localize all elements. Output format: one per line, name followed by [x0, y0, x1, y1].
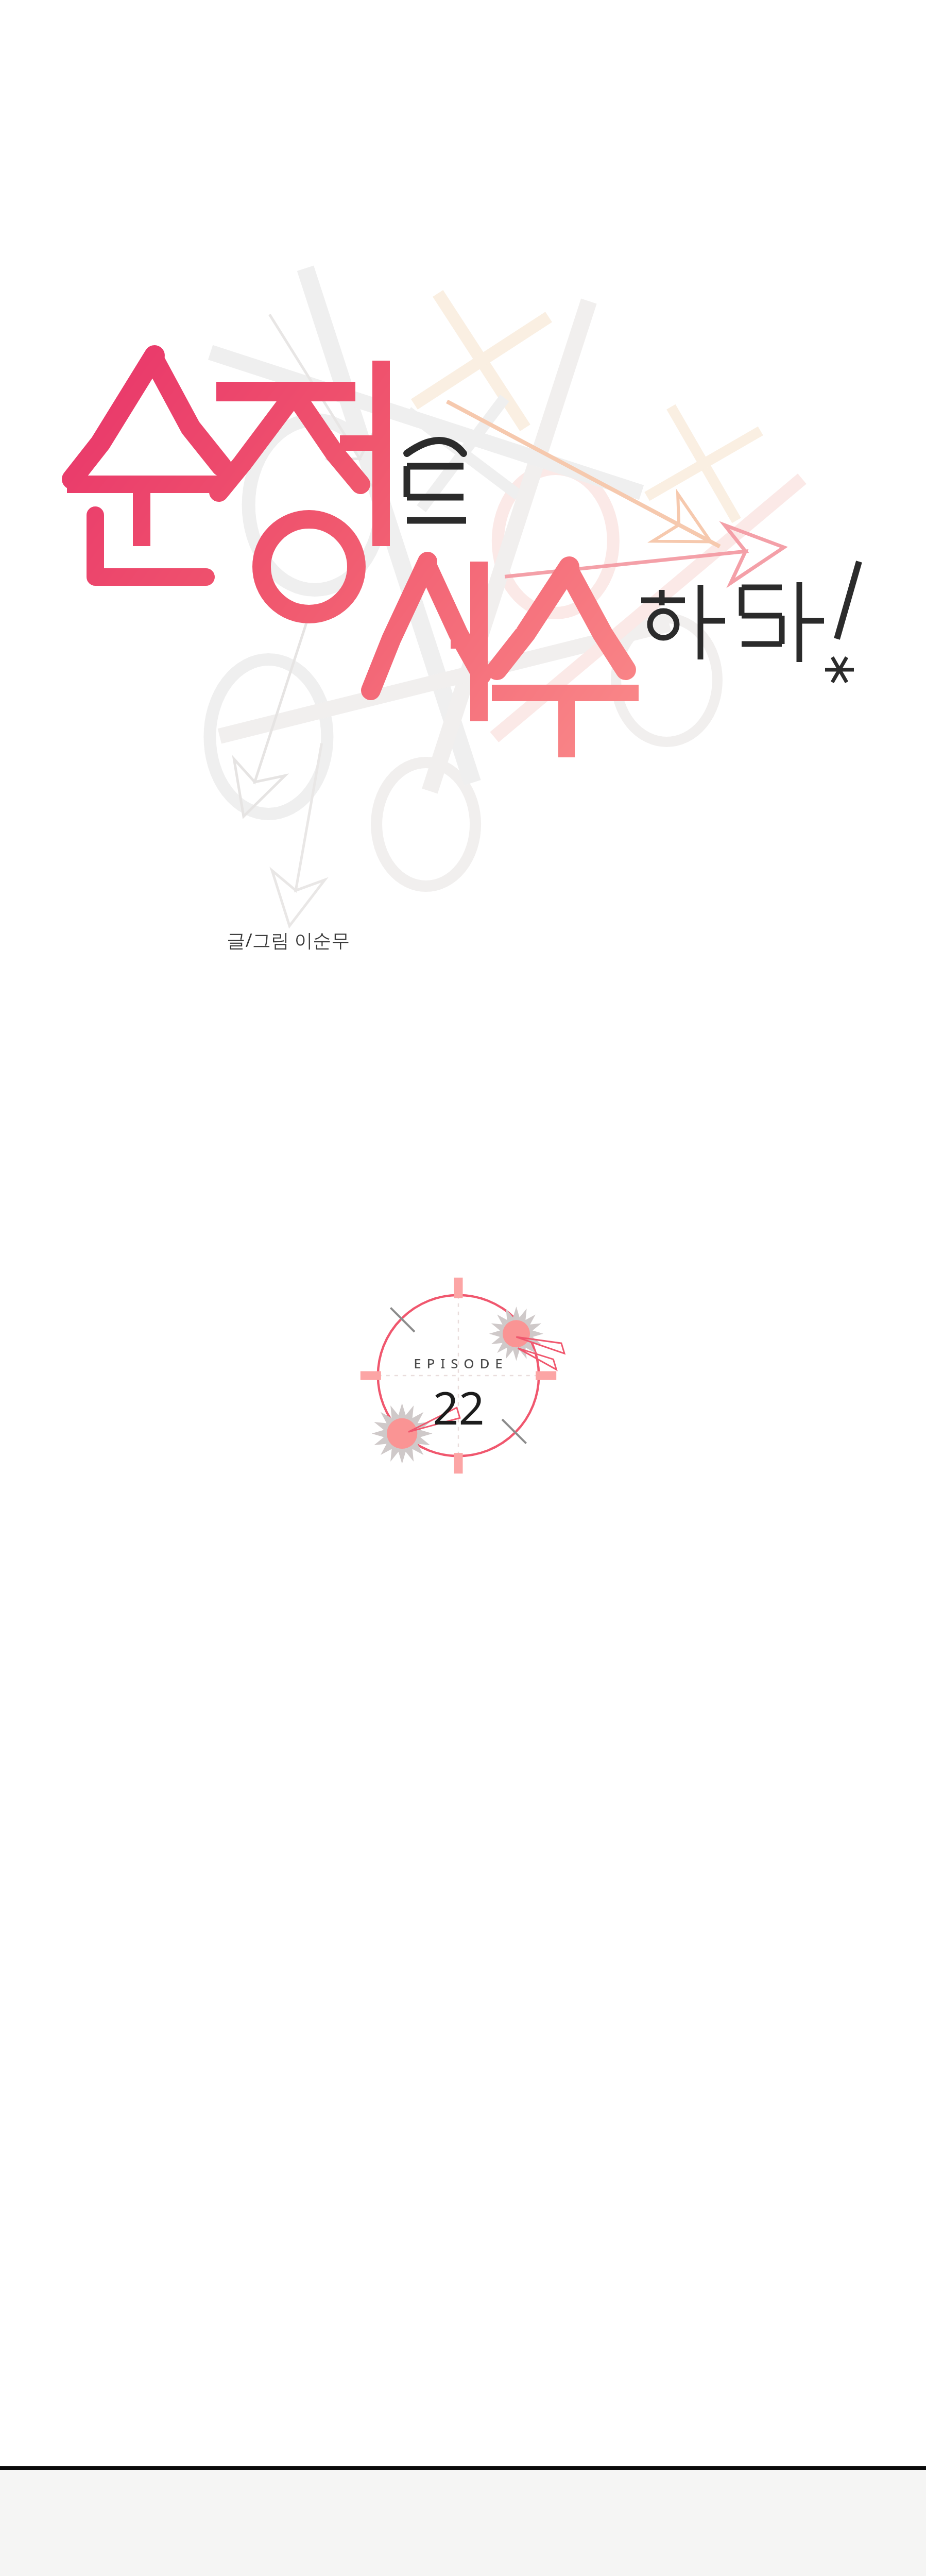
button[interactable]: 글/그림 이순무 — [155, 927, 422, 953]
staticText: 글/그림 이순무 — [155, 927, 422, 953]
staticText: E P I S O D E — [414, 1354, 504, 1372]
staticText: 22 — [433, 1376, 485, 1438]
button[interactable]: Episode 22 — [345, 1262, 572, 1489]
